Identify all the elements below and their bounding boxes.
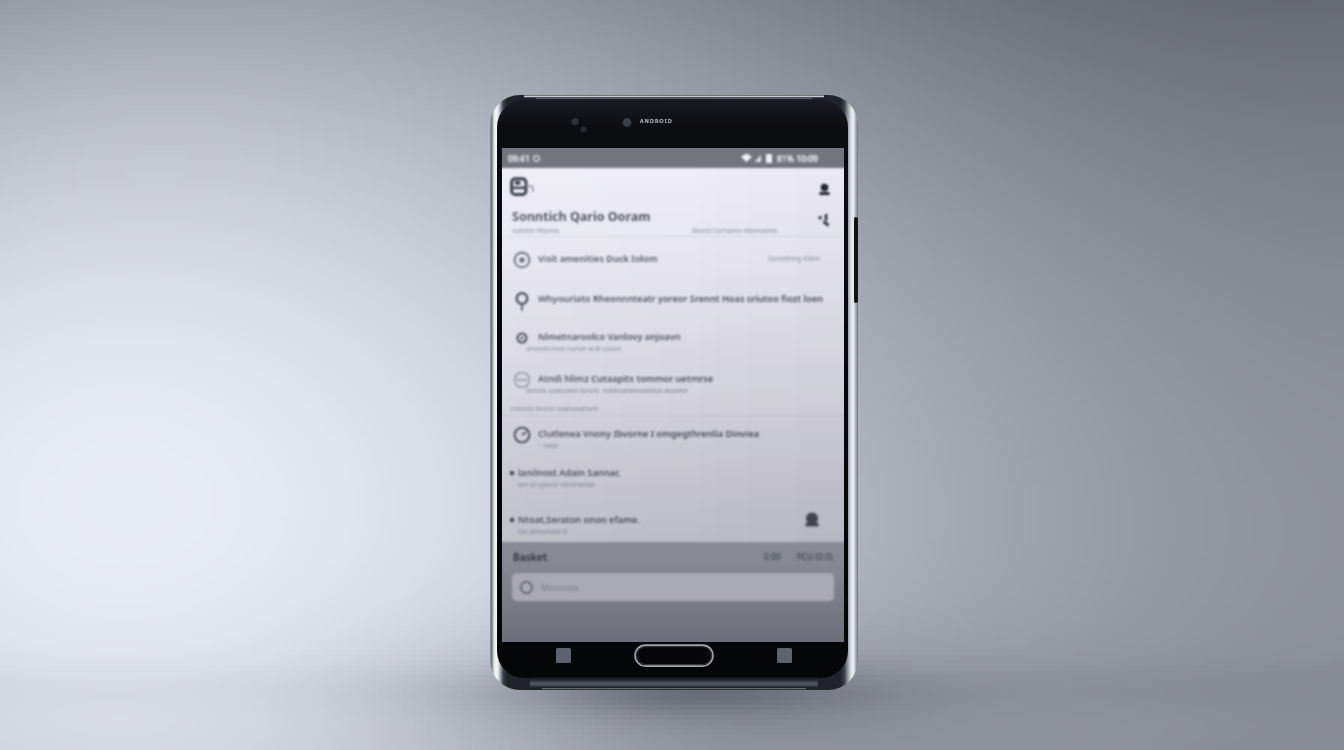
staticText: subtitle Mionns	[512, 226, 560, 235]
button[interactable]: Whyouriato Rheonnnteatr yoreor Srennt Ho…	[502, 288, 844, 328]
staticText: Sonntich Qario Ooram	[512, 208, 651, 225]
staticText: Nlmetnaroolco Vanlovy anjoavn	[538, 330, 844, 343]
button[interactable]: Visit amenities Duck Iolom	[502, 248, 844, 288]
staticText: Clutlenea Vnony Ibvorne I omgegthrenlia …	[538, 427, 844, 440]
staticText: 09:41	[508, 153, 530, 165]
button[interactable]: More options	[813, 208, 835, 230]
staticText: Atndi hlimz Cutaapits tommor uetmrse	[538, 372, 844, 385]
button[interactable]: Basket	[502, 542, 844, 572]
button[interactable]: lanilnost Adain Sannar,	[502, 462, 844, 502]
staticText: 81% 10:09	[777, 153, 818, 165]
staticText: Ntoat,Seraton onon efame.	[518, 513, 839, 526]
button[interactable]: Moonvate	[512, 573, 834, 601]
staticText: Basket	[513, 550, 548, 564]
staticText: Something 43km	[768, 254, 820, 263]
staticText: ore st ryseror mrorrorsse	[518, 480, 595, 489]
staticText: ros onnonoeo lv	[518, 527, 568, 536]
staticText: Itoord Cornonro etoorusmo	[692, 226, 778, 235]
staticText: Visit amenities Duck Iolom	[538, 252, 844, 265]
staticText: 0.00	[764, 551, 781, 563]
button[interactable]: Contact	[802, 510, 822, 530]
staticText: cxoozzo brono uzanuzumoro	[510, 404, 599, 413]
button[interactable]: Ntoat,Seraton onon efame.	[502, 509, 844, 549]
button[interactable]: Atndi hlimz Cutaapits tommor uetmrse	[502, 368, 844, 408]
button[interactable]: Account	[812, 178, 836, 202]
staticText: Whyouriato Rheonnnteatr yoreor Srennt Ho…	[538, 292, 844, 305]
staticText: lanilnost Adain Sannar,	[518, 466, 839, 479]
staticText: lionsto uzesusest iorons vobitoaresvutas…	[526, 386, 689, 395]
staticText: FCU (0.0)	[797, 551, 833, 563]
staticText: snussdunvvs nunoe w Al ousun	[526, 344, 622, 353]
staticText: Moonvate	[541, 582, 579, 593]
button[interactable]: Open navigation menu	[508, 175, 532, 199]
staticText: ANDROID	[640, 117, 673, 124]
button[interactable]: Nlmetnaroolco Vanlovy anjoavn	[502, 326, 844, 366]
staticText: • tooe	[538, 441, 558, 450]
button[interactable]: Clutlenea Vnony Ibvorne I omgegthrenlia …	[502, 423, 844, 463]
